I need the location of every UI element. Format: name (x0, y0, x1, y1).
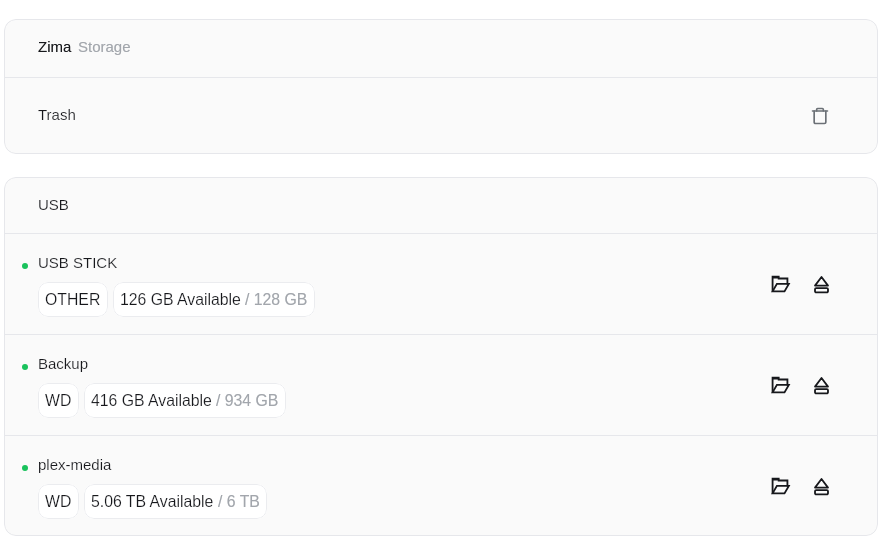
staticText: / 6 TB (218, 493, 260, 511)
staticText: plex-media (38, 456, 112, 473)
button[interactable]: Open folder (762, 468, 798, 504)
button[interactable]: USB (4, 177, 878, 233)
staticText: 416 GB Available (91, 392, 212, 410)
staticText: 126 GB Available (120, 291, 241, 309)
button[interactable]: Eject (803, 468, 839, 504)
staticText: / 128 GB (245, 291, 308, 309)
button[interactable]: Trash (4, 78, 878, 154)
staticText: USB (38, 196, 69, 213)
staticText: Trash (38, 106, 76, 123)
button[interactable]: Open folder (762, 266, 798, 302)
staticText: USB STICK (38, 254, 118, 271)
staticText: WD (45, 392, 72, 410)
staticText: Zima (38, 38, 72, 55)
button[interactable]: Eject (803, 266, 839, 302)
button[interactable]: Open folder (762, 367, 798, 403)
staticText: / 934 GB (216, 392, 279, 410)
staticText: OTHER (45, 291, 101, 309)
staticText: 5.06 TB Available (91, 493, 214, 511)
button[interactable]: Backup (4, 335, 878, 435)
staticText: Storage (78, 38, 131, 55)
staticText: Zima (38, 38, 72, 55)
button[interactable]: USB STICK (4, 234, 878, 334)
button[interactable]: plex-media (4, 436, 878, 536)
button[interactable]: Delete (802, 98, 838, 134)
staticText: Backup (38, 355, 89, 372)
button[interactable]: Zima (4, 19, 878, 77)
staticText: WD (45, 493, 72, 511)
button[interactable]: Eject (803, 367, 839, 403)
